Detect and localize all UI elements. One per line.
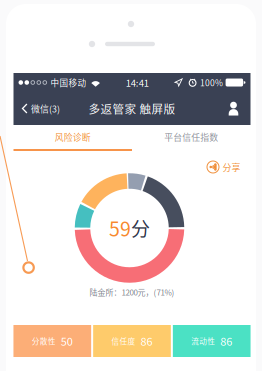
button[interactable]: 风险诊断: [13, 125, 132, 149]
button[interactable]: 分散性: [13, 325, 91, 357]
staticText: 多返管家 触屏版: [88, 100, 175, 117]
staticText: 86: [220, 333, 232, 349]
staticText: 100%: [200, 76, 223, 89]
button[interactable]: 平台信任指数: [132, 125, 250, 149]
staticText: 59: [109, 214, 131, 242]
button[interactable]: 微信(3): [13, 92, 66, 125]
staticText: 50: [61, 333, 73, 349]
staticText: 14:41: [126, 76, 149, 89]
staticText: 微信(3): [31, 102, 60, 115]
staticText: 陆金所：1200元，(71%): [89, 286, 174, 298]
button[interactable]: 分享: [206, 158, 250, 175]
staticText: 平台信任指数: [164, 131, 218, 143]
button[interactable]: 流动性: [173, 325, 250, 357]
staticText: 流动性: [191, 335, 215, 346]
staticText: 信任度: [111, 335, 135, 346]
staticText: 风险诊断: [55, 131, 91, 143]
staticText: 分散性: [32, 335, 56, 346]
staticText: 分: [131, 214, 150, 242]
staticText: 中国移动: [51, 76, 87, 89]
staticText: 分享: [222, 161, 240, 173]
button[interactable]: 信任度: [93, 325, 171, 357]
staticText: 86: [140, 333, 152, 349]
button[interactable]: Account: [218, 92, 250, 125]
